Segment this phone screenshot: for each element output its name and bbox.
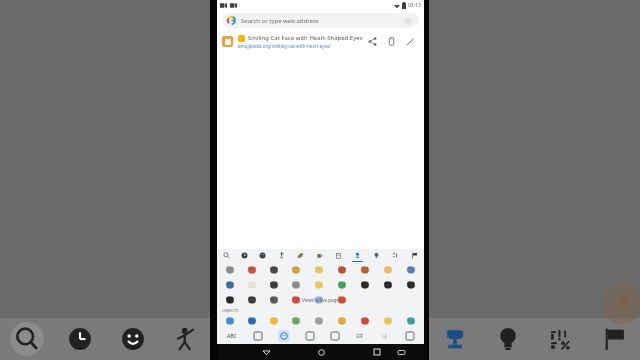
button[interactable]: Recent — [53, 318, 106, 360]
button[interactable] — [307, 262, 330, 277]
button[interactable]: Objects — [481, 318, 534, 360]
button[interactable] — [219, 292, 241, 307]
staticText: OBJECTS — [222, 308, 239, 313]
button[interactable] — [376, 277, 399, 292]
staticText: Search or type web address — [241, 17, 319, 25]
button[interactable] — [241, 277, 263, 292]
button[interactable]: Edit — [404, 35, 417, 48]
button[interactable] — [330, 292, 353, 307]
button[interactable]: Food — [310, 249, 329, 262]
staticText: ABC — [227, 333, 237, 340]
button[interactable]: Backspace — [397, 328, 422, 344]
button[interactable]: Flags — [587, 318, 640, 360]
button[interactable]: Emoticons — [372, 328, 397, 344]
button[interactable] — [307, 277, 330, 292]
button[interactable]: Search — [0, 318, 53, 360]
button[interactable]: Nature — [291, 249, 310, 262]
button[interactable] — [263, 277, 285, 292]
button[interactable]: Recents — [364, 344, 389, 360]
button[interactable]: ABC — [219, 328, 245, 344]
button[interactable] — [219, 262, 241, 277]
button[interactable] — [353, 277, 376, 292]
button[interactable] — [376, 313, 399, 328]
button[interactable] — [376, 262, 399, 277]
button[interactable] — [285, 277, 307, 292]
button[interactable]: Recent — [235, 249, 253, 262]
button[interactable] — [241, 262, 263, 277]
button[interactable]: Symbols — [534, 318, 587, 360]
staticText: Viewing live page — [302, 297, 339, 303]
button[interactable]: Flags — [405, 249, 424, 262]
button[interactable]: Home — [309, 344, 334, 360]
button[interactable] — [285, 313, 307, 328]
button[interactable] — [219, 313, 241, 328]
button[interactable] — [307, 292, 330, 307]
button[interactable]: Stickers — [245, 328, 271, 344]
button[interactable]: GIF — [347, 328, 372, 344]
button[interactable] — [219, 277, 241, 292]
button[interactable]: Image — [322, 328, 347, 344]
button[interactable] — [285, 262, 307, 277]
staticText: emojipedia.org/smiling-cat-with-heart-ey… — [238, 43, 331, 49]
button[interactable]: Smiling Cat Face with Heart-Shaped Eyes … — [217, 30, 424, 52]
button[interactable] — [399, 277, 422, 292]
staticText: Smiling Cat Face with Heart-Shaped Eyes … — [248, 34, 363, 42]
button[interactable] — [263, 313, 285, 328]
button[interactable]: Smileys — [106, 318, 159, 360]
button[interactable]: Activities — [348, 249, 367, 262]
button[interactable]: Share — [366, 35, 379, 48]
staticText: 03:13 — [408, 2, 421, 9]
button[interactable]: Search — [217, 249, 235, 262]
button[interactable]: Back — [254, 344, 279, 360]
button[interactable]: People — [272, 249, 291, 262]
button[interactable] — [330, 313, 353, 328]
button[interactable] — [307, 313, 330, 328]
button[interactable]: Travel — [329, 249, 348, 262]
button[interactable] — [399, 313, 422, 328]
button[interactable]: Smileys — [253, 249, 272, 262]
button[interactable] — [330, 262, 353, 277]
button[interactable]: Copy — [385, 35, 398, 48]
button[interactable]: Emoji — [271, 328, 297, 344]
button[interactable] — [285, 292, 307, 307]
button[interactable]: Switch keyboard — [389, 344, 414, 360]
button[interactable]: Objects — [367, 249, 386, 262]
button[interactable] — [263, 262, 285, 277]
button[interactable] — [263, 292, 285, 307]
button[interactable] — [330, 277, 353, 292]
button[interactable] — [353, 313, 376, 328]
staticText: GIF — [356, 333, 364, 339]
button[interactable]: People — [159, 318, 212, 360]
button[interactable]: Sticker pack — [297, 328, 322, 344]
button[interactable] — [241, 292, 263, 307]
staticText: :-) — [382, 333, 387, 340]
button[interactable] — [241, 313, 263, 328]
button[interactable]: Symbols — [386, 249, 405, 262]
button[interactable] — [399, 262, 422, 277]
button[interactable]: Search or type web address — [222, 13, 419, 28]
button[interactable]: Awards — [428, 318, 481, 360]
button[interactable] — [353, 262, 376, 277]
